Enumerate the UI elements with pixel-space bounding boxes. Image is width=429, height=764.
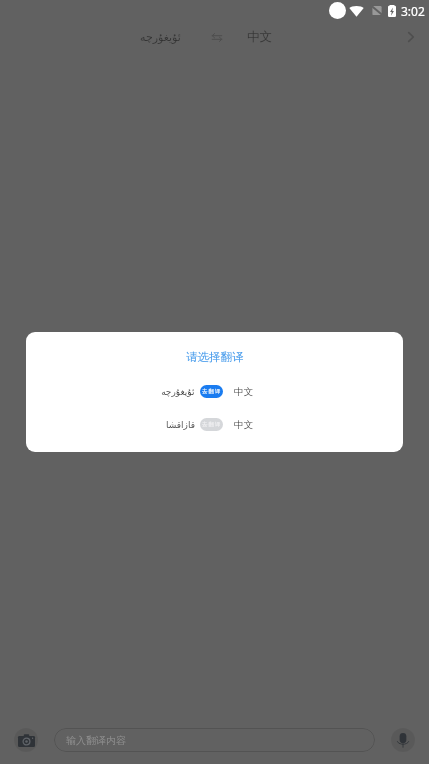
button[interactable]: 中文: [243, 24, 277, 50]
staticText: 中文: [234, 386, 253, 398]
button[interactable]: 输入翻译内容: [54, 728, 375, 752]
staticText: 输入翻译内容: [66, 734, 126, 747]
staticText: 请选择翻译: [186, 350, 244, 364]
button[interactable]: Swap languages: [207, 27, 227, 47]
staticText: ئۇيغۇرچە: [140, 31, 181, 44]
staticText: 中文: [247, 29, 273, 45]
staticText: 3:02: [401, 3, 425, 19]
button[interactable]: ئۇيغۇرچە: [136, 26, 185, 49]
staticText: ئۇيغۇرچە: [161, 387, 195, 397]
button[interactable]: Voice input: [391, 728, 415, 752]
staticText: 去翻译: [202, 421, 222, 428]
button[interactable]: قازاقشا: [26, 415, 403, 434]
button[interactable]: Camera: [14, 728, 38, 752]
staticText: 去翻译: [202, 388, 222, 395]
staticText: قازاقشا: [166, 420, 195, 430]
button[interactable]: ئۇيغۇرچە: [26, 382, 403, 401]
staticText: 中文: [234, 419, 253, 431]
